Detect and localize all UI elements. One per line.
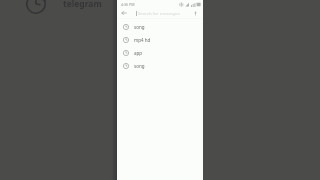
staticText: song [134, 63, 145, 69]
staticText: mp4 hd [134, 37, 151, 43]
staticText: telegram [63, 0, 102, 10]
button[interactable]: app [117, 46, 203, 59]
staticText: song [134, 24, 145, 30]
staticText: Search for messages [138, 10, 180, 16]
button[interactable]: Voice search [192, 10, 198, 16]
staticText: app [134, 50, 143, 56]
staticText: 4:36 PM [121, 2, 135, 7]
button[interactable]: song [117, 20, 203, 33]
button[interactable]: mp4 hd [117, 33, 203, 46]
button[interactable]: Back [121, 10, 127, 16]
button[interactable]: song [117, 59, 203, 72]
